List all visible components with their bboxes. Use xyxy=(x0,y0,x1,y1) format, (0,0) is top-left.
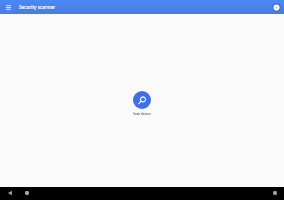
button[interactable]: Scan device xyxy=(133,91,151,109)
staticText: Security scanner xyxy=(19,4,56,10)
button[interactable]: Recent apps xyxy=(270,188,280,198)
button[interactable]: Home xyxy=(22,188,32,198)
button[interactable]: Back xyxy=(5,188,15,198)
staticText: Scan device xyxy=(133,112,151,116)
button[interactable]: Account xyxy=(271,2,282,13)
button[interactable]: Open navigation menu xyxy=(3,2,14,13)
